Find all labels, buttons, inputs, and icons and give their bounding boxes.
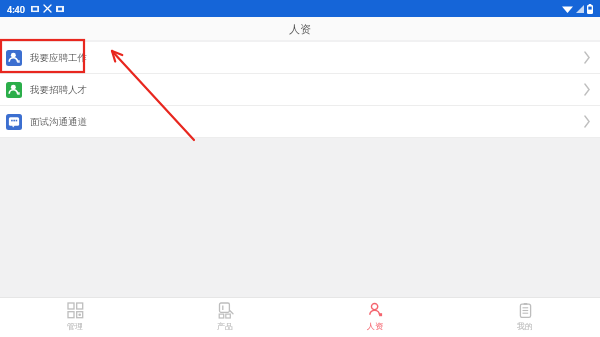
button[interactable]: 产品	[150, 298, 300, 337]
button[interactable]: 管理	[0, 298, 150, 337]
button[interactable]: 人资	[300, 298, 450, 337]
staticText: 我要应聘工作	[30, 52, 87, 64]
staticText: 人资	[289, 22, 311, 36]
button[interactable]: 我要应聘工作	[0, 42, 600, 73]
staticText: 面试沟通通道	[30, 116, 87, 128]
staticText: 人资	[367, 321, 383, 331]
staticText: 4:40	[7, 3, 25, 15]
staticText: 产品	[217, 321, 233, 331]
staticText: 我的	[517, 321, 533, 331]
button[interactable]: 我要招聘人才	[0, 74, 600, 105]
staticText: 我要招聘人才	[30, 84, 87, 96]
button[interactable]: 我的	[450, 298, 600, 337]
button[interactable]: 面试沟通通道	[0, 106, 600, 137]
staticText: 管理	[67, 321, 83, 331]
